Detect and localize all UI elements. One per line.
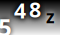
staticText: 8: [29, 0, 41, 23]
staticText: 4: [14, 0, 26, 24]
staticText: z: [46, 5, 55, 28]
staticText: 5: [0, 11, 12, 35]
